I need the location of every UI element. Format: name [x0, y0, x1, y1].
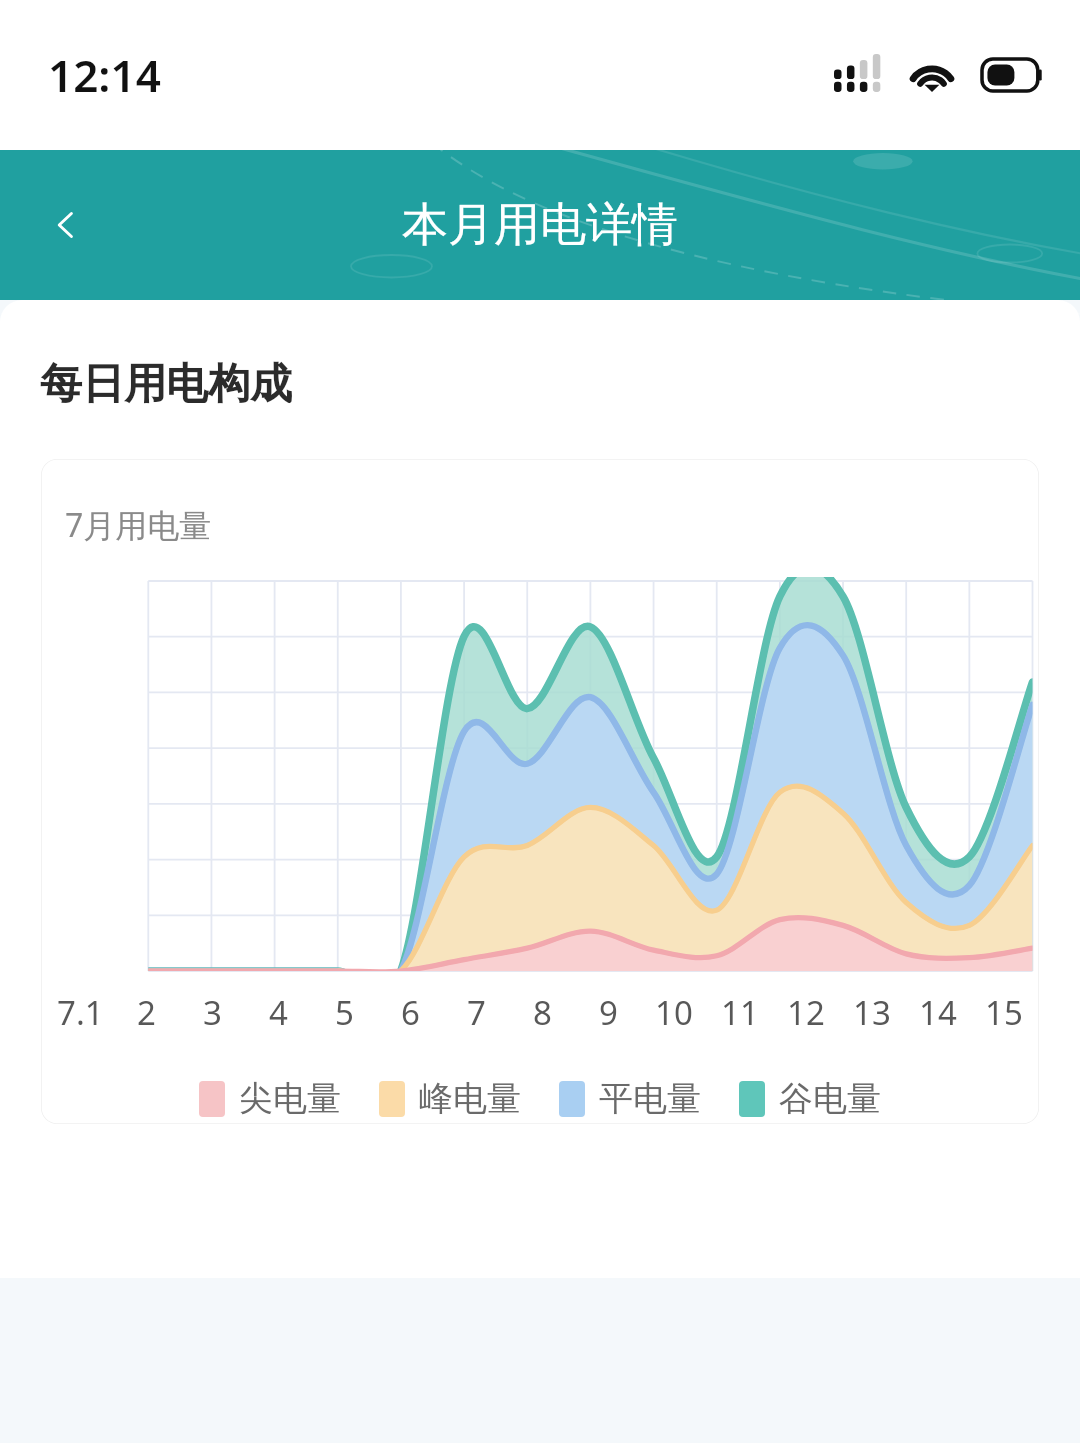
button[interactable]: Back: [24, 183, 108, 267]
staticText: 10: [655, 990, 693, 1035]
staticText: 4: [269, 990, 288, 1035]
button[interactable]: 谷电量: [737, 1075, 883, 1122]
staticText: 3: [203, 990, 222, 1035]
staticText: 2: [137, 990, 156, 1035]
staticText: 14: [919, 990, 957, 1035]
staticText: 峰电量: [419, 1077, 521, 1120]
staticText: 本月用电详情: [402, 196, 678, 254]
staticText: 平电量: [599, 1077, 701, 1120]
staticText: 7.1: [57, 990, 104, 1035]
staticText: 7: [467, 990, 486, 1035]
button[interactable]: 平电量: [557, 1075, 703, 1122]
button[interactable]: 7月用电量: [41, 459, 1039, 1124]
staticText: 12: [787, 990, 825, 1035]
staticText: 6: [401, 990, 420, 1035]
staticText: 8: [533, 990, 552, 1035]
button[interactable]: 峰电量: [377, 1075, 523, 1122]
staticText: 5: [335, 990, 354, 1035]
staticText: 7月用电量: [65, 503, 212, 547]
staticText: 谷电量: [779, 1077, 881, 1120]
staticText: 每日用电构成: [40, 358, 292, 411]
staticText: 尖电量: [239, 1077, 341, 1120]
staticText: 15: [985, 990, 1023, 1035]
staticText: 11: [721, 990, 759, 1035]
staticText: 9: [599, 990, 618, 1035]
staticText: 13: [853, 990, 891, 1035]
staticText: 12:14: [48, 45, 161, 105]
button[interactable]: 尖电量: [197, 1075, 343, 1122]
